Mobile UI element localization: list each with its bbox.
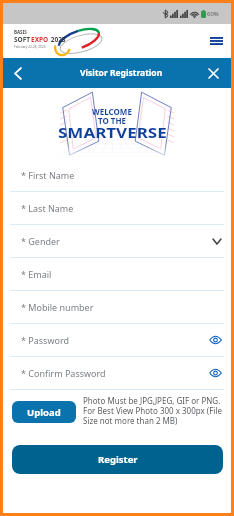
button[interactable]: Upload [12,401,76,423]
button[interactable]: * Password [10,324,224,357]
button[interactable]: Menu [205,30,227,52]
staticText: EXPO [31,35,49,44]
staticText: Register [98,453,138,466]
staticText: * First Name [21,169,75,181]
staticText: WELCOME [92,106,132,117]
staticText: * Gender [21,235,60,247]
button[interactable]: * Confirm Password [10,357,224,390]
button[interactable]: * Gender [10,225,224,258]
staticText: February 22-26, 2023 [14,45,46,49]
staticText: SMARTVERSE [58,124,167,142]
staticText: * Password [21,334,70,346]
staticText: Photo Must be JPG,JPEG, GIF or PNG. For … [83,395,225,426]
staticText: * Email [21,268,52,280]
staticText: BASIS [14,29,27,35]
button[interactable]: * Email [10,258,224,291]
staticText: * Mobile number [21,301,94,313]
staticText: * Last Name [21,202,74,214]
button[interactable]: * Mobile number [10,291,224,324]
button[interactable]: * Last Name [10,192,224,225]
staticText: TO THE [98,115,127,126]
staticText: 2023 [49,35,66,44]
button[interactable]: Back [7,62,29,84]
staticText: SOFT [14,35,31,44]
staticText: 60% [207,10,219,18]
staticText: Visitor Registration [80,67,163,79]
button[interactable]: Register [12,445,223,474]
staticText: Upload [27,406,61,419]
button[interactable]: Close [202,62,224,84]
button[interactable]: * First Name [10,159,224,192]
staticText: * Confirm Password [21,367,106,379]
